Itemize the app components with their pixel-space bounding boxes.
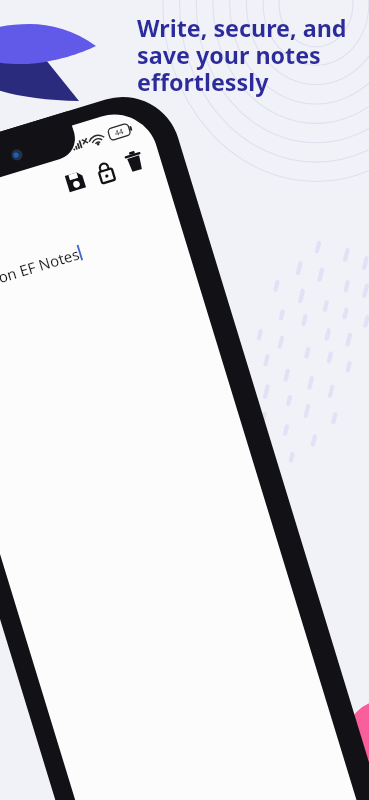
staticText: Write, secure, and save your notes effor… <box>137 12 347 98</box>
